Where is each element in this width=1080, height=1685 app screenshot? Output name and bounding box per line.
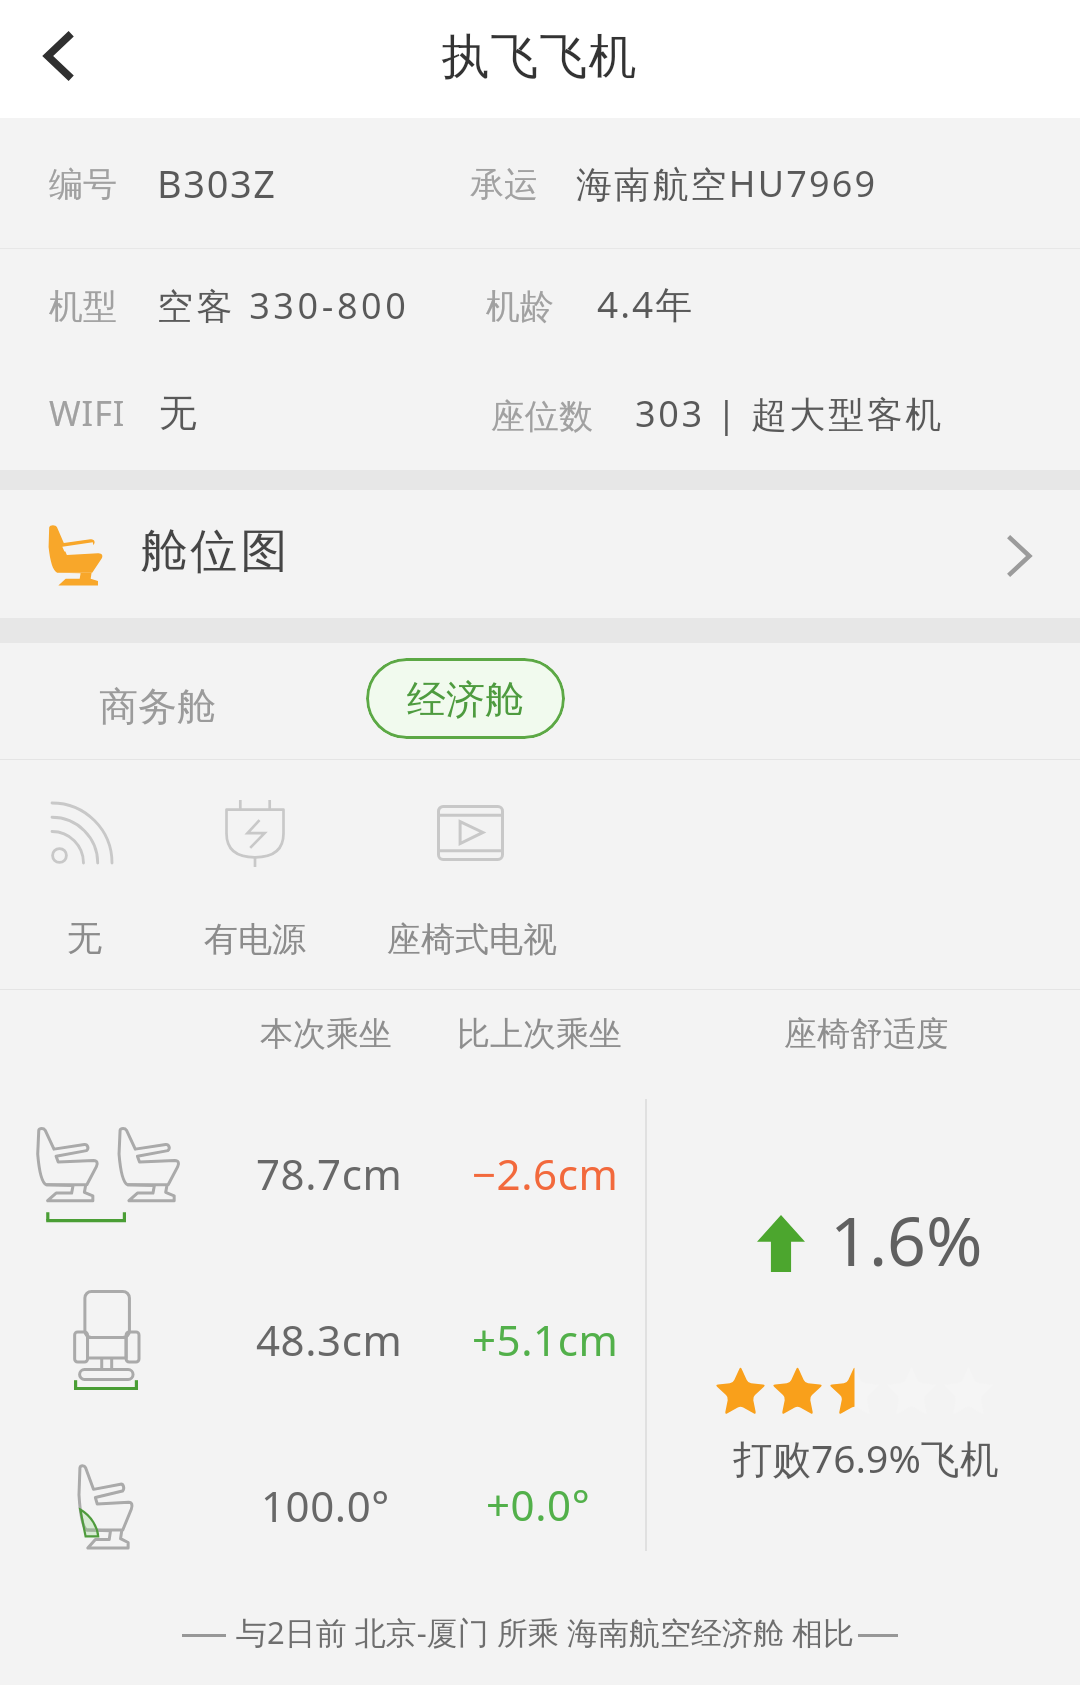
staticText: 4.4年: [597, 278, 695, 329]
staticText: 经济舱: [407, 675, 524, 724]
staticText: 无: [159, 389, 197, 437]
staticText: 有电源: [204, 918, 306, 961]
staticText: 100.0°: [261, 1477, 390, 1534]
staticText: 比上次乘坐: [457, 1013, 622, 1055]
staticText: 座椅式电视: [387, 918, 557, 961]
staticText: 座椅舒适度: [784, 1013, 949, 1055]
staticText: 舱位图: [139, 522, 289, 581]
staticText: 48.3cm: [256, 1311, 403, 1368]
button[interactable]: Back: [0, 0, 112, 118]
staticText: +0.0°: [486, 1476, 591, 1533]
staticText: 编号: [49, 163, 117, 206]
staticText: 303 | 超大型客机: [635, 389, 944, 438]
staticText: +5.1cm: [472, 1311, 619, 1368]
staticText: 无: [67, 916, 102, 960]
staticText: −2.6cm: [472, 1145, 619, 1202]
staticText: 机型: [49, 285, 117, 328]
staticText: 打败76.9%飞机: [733, 1431, 999, 1484]
staticText: 海南航空HU7969: [576, 159, 878, 208]
button[interactable]: 舱位图: [0, 490, 1080, 618]
staticText: B303Z: [157, 157, 277, 209]
staticText: 与2日前 北京-厦门 所乘 海南航空经济舱 相比: [236, 1611, 854, 1653]
staticText: WIFI: [49, 390, 126, 436]
staticText: 机龄: [486, 285, 554, 328]
staticText: 1.6%: [830, 1193, 983, 1286]
staticText: 执飞飞机: [441, 27, 637, 87]
staticText: 78.7cm: [256, 1145, 403, 1202]
staticText: 本次乘坐: [260, 1013, 392, 1055]
button[interactable]: 经济舱: [366, 658, 565, 739]
staticText: 座位数: [491, 395, 593, 438]
staticText: 承运: [470, 163, 538, 206]
button[interactable]: 商务舱: [79, 662, 236, 751]
staticText: 商务舱: [99, 682, 216, 731]
staticText: 空客 330-800: [157, 281, 410, 330]
